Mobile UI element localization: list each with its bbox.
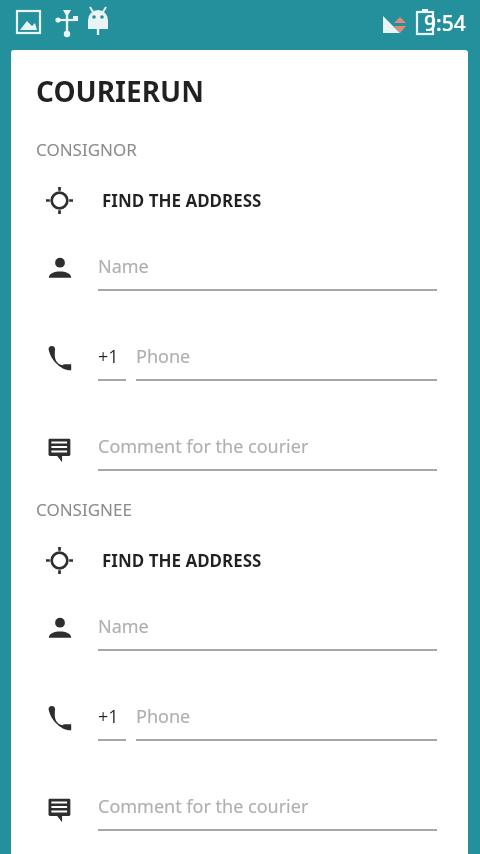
staticText: 9:54 — [424, 9, 466, 38]
staticText: FIND THE ADDRESS — [102, 189, 262, 212]
button[interactable]: +1 — [11, 336, 468, 382]
staticText: COURIERUN — [36, 72, 204, 110]
staticText: +1 — [98, 344, 119, 369]
staticText: Name — [98, 254, 149, 279]
staticText: +1 — [98, 704, 119, 729]
button[interactable]: Name — [11, 606, 468, 652]
staticText: Comment for the courier — [98, 794, 309, 819]
staticText: Phone — [136, 704, 191, 729]
button[interactable]: Find the address — [11, 537, 468, 583]
staticText: Name — [98, 614, 149, 639]
staticText: CONSIGNEE — [36, 498, 132, 521]
staticText: CONSIGNOR — [36, 138, 137, 161]
button[interactable]: Find the address — [11, 177, 468, 223]
button[interactable]: +1 — [11, 696, 468, 742]
staticText: FIND THE ADDRESS — [102, 549, 262, 572]
button[interactable]: Comment for the courier — [11, 426, 468, 472]
button[interactable]: Name — [11, 246, 468, 292]
button[interactable]: Comment for the courier — [11, 786, 468, 832]
staticText: Phone — [136, 344, 191, 369]
staticText: Comment for the courier — [98, 434, 309, 459]
